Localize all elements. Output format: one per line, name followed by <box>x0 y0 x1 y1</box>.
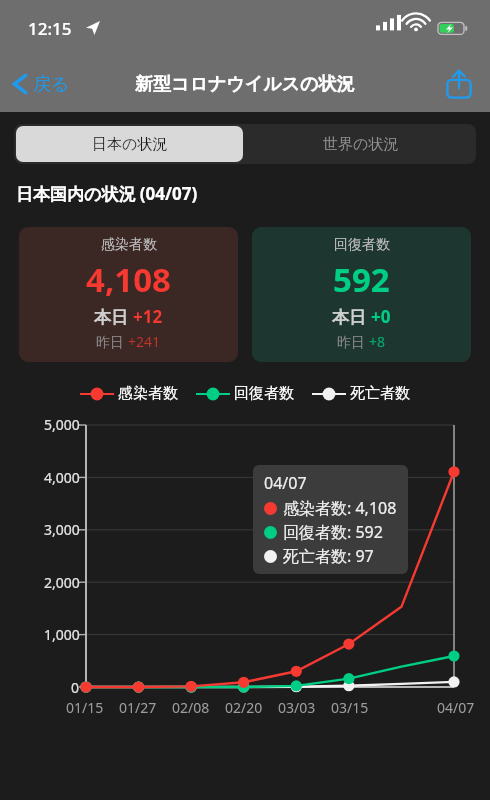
staticText: 02/08 <box>172 698 210 717</box>
staticText: 感染者数 <box>101 236 157 254</box>
staticText: 01/27 <box>119 698 157 717</box>
staticText: 4,000 <box>44 468 80 487</box>
staticText: 本日 <box>94 305 133 328</box>
staticText: 592 <box>333 257 390 302</box>
staticText: 本日 <box>332 305 371 328</box>
staticText: 世界の状況 <box>323 135 399 154</box>
staticText: 03/15 <box>331 698 369 717</box>
staticText: 新型コロナウイルスの状況 <box>135 73 355 96</box>
button[interactable]: 感染者数 <box>19 227 238 362</box>
staticText: +8 <box>369 332 386 351</box>
staticText: 2,000 <box>44 573 80 592</box>
staticText: +0 <box>371 305 391 328</box>
button[interactable]: 回復者数 <box>252 227 471 362</box>
button[interactable]: 戻る <box>0 71 78 97</box>
staticText: 3,000 <box>44 520 80 539</box>
staticText: +241 <box>128 332 161 351</box>
staticText: 01/15 <box>66 698 104 717</box>
staticText: 12:15 <box>28 17 72 40</box>
staticText: 死亡者数 <box>350 384 410 403</box>
staticText: 感染者数: 4,108 <box>283 497 397 519</box>
staticText: 4,108 <box>86 257 171 302</box>
button[interactable]: Share <box>442 67 476 101</box>
button[interactable]: 日本の状況 <box>16 126 243 162</box>
staticText: 0 <box>71 678 80 697</box>
staticText: 回復者数 <box>334 236 390 254</box>
staticText: 5,000 <box>44 415 80 434</box>
staticText: 感染者数 <box>118 384 178 403</box>
staticText: 戻る <box>33 73 70 96</box>
staticText: 02/20 <box>225 698 263 717</box>
staticText: 日本の状況 <box>92 135 168 154</box>
staticText: 昨日 <box>337 332 369 351</box>
staticText: 回復者数: 592 <box>283 521 383 543</box>
staticText: 死亡者数: 97 <box>283 545 374 567</box>
button[interactable]: 世界の状況 <box>245 124 476 164</box>
staticText: 昨日 <box>96 332 128 351</box>
staticText: 日本国内の状況 (04/07) <box>16 182 198 205</box>
staticText: 03/03 <box>278 698 316 717</box>
staticText: 04/07 <box>264 472 307 494</box>
staticText: 回復者数 <box>234 384 294 403</box>
staticText: 1,000 <box>44 625 80 644</box>
staticText: 04/07 <box>437 698 475 717</box>
staticText: +12 <box>133 305 163 328</box>
